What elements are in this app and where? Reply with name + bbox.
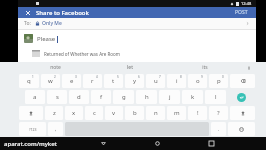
staticText: s xyxy=(56,93,59,101)
button[interactable]: h xyxy=(136,90,157,104)
button[interactable]: 9 xyxy=(188,74,207,88)
button[interactable]: let xyxy=(92,62,167,73)
button[interactable]: Delete xyxy=(230,74,255,88)
staticText: v xyxy=(112,109,116,117)
staticText: p xyxy=(217,77,221,85)
button[interactable]: note xyxy=(18,62,92,73)
staticText: ?123 xyxy=(29,127,37,132)
staticText: y xyxy=(133,77,137,85)
staticText: l xyxy=(215,93,217,101)
button[interactable]: , xyxy=(48,122,63,136)
staticText: m xyxy=(174,109,180,117)
button[interactable]: Tag people xyxy=(32,60,41,69)
staticText: t xyxy=(112,77,115,85)
button[interactable]: 3 xyxy=(62,74,81,88)
button[interactable]: ! xyxy=(188,106,207,120)
staticText: u xyxy=(154,77,158,85)
button[interactable]: l xyxy=(205,90,226,104)
button[interactable]: 0 xyxy=(209,74,228,88)
staticText: x xyxy=(72,109,76,117)
staticText: f xyxy=(100,93,103,101)
staticText: e xyxy=(70,77,74,85)
button[interactable]: Close xyxy=(23,8,32,17)
button[interactable]: m xyxy=(167,106,186,120)
staticText: q xyxy=(27,77,31,85)
staticText: 1 xyxy=(32,75,34,79)
staticText: note xyxy=(50,64,61,71)
button[interactable]: Returned of Whether was Are Room xyxy=(24,50,250,57)
staticText: ? xyxy=(217,109,220,117)
button[interactable]: n xyxy=(146,106,165,120)
button[interactable]: 6 xyxy=(125,74,144,88)
staticText: b xyxy=(133,109,137,117)
button[interactable]: 5 xyxy=(104,74,123,88)
staticText: i xyxy=(176,77,178,85)
button[interactable]: 1 xyxy=(19,74,39,88)
staticText: k xyxy=(191,93,195,101)
staticText: Please xyxy=(37,35,56,43)
button[interactable]: a xyxy=(25,90,45,104)
staticText: j xyxy=(169,93,171,101)
staticText: ! xyxy=(197,109,199,117)
button[interactable]: Home xyxy=(150,137,164,150)
button[interactable]: POST xyxy=(232,8,251,17)
button[interactable]: j xyxy=(159,90,180,104)
button[interactable]: ?123 xyxy=(19,122,46,136)
button[interactable]: Enter xyxy=(237,93,246,102)
button[interactable]: Location xyxy=(68,60,77,69)
button[interactable]: Shift xyxy=(19,106,43,120)
button[interactable]: ? xyxy=(209,106,228,120)
staticText: d xyxy=(77,93,81,101)
staticText: 4 xyxy=(96,75,98,79)
button[interactable]: 4 xyxy=(83,74,102,88)
button[interactable]: 2 xyxy=(41,74,60,88)
staticText: 6 xyxy=(138,75,140,79)
button[interactable]: z xyxy=(45,106,63,120)
button[interactable]: Back xyxy=(96,137,110,150)
button[interactable]: Recents xyxy=(204,137,218,150)
staticText: 3 xyxy=(75,75,77,79)
staticText: Returned of Whether was Are Room xyxy=(44,51,120,57)
button[interactable]: To: xyxy=(18,18,256,29)
staticText: . xyxy=(218,126,220,133)
button[interactable]: k xyxy=(182,90,203,104)
staticText: o xyxy=(196,77,200,85)
button[interactable]: Emoji xyxy=(228,122,255,136)
staticText: aparat.com/myket xyxy=(4,140,57,148)
button[interactable]: Shift xyxy=(230,106,255,120)
button[interactable]: Feeling xyxy=(50,60,59,69)
button[interactable]: 8 xyxy=(167,74,186,88)
button[interactable]: x xyxy=(65,106,83,120)
staticText: Only Me xyxy=(42,20,62,27)
staticText: POST xyxy=(235,9,248,16)
staticText: let xyxy=(127,64,133,71)
staticText: To: xyxy=(24,20,31,27)
staticText: , xyxy=(55,126,57,133)
button[interactable]: 7 xyxy=(146,74,165,88)
button[interactable]: d xyxy=(69,90,89,104)
staticText: Share to Facebook xyxy=(36,9,89,17)
staticText: h xyxy=(145,93,149,101)
button[interactable]: v xyxy=(105,106,123,120)
button[interactable]: f xyxy=(91,90,111,104)
button[interactable]: its xyxy=(167,62,242,73)
staticText: z xyxy=(53,109,56,117)
staticText: 5 xyxy=(117,75,119,79)
button[interactable]: s xyxy=(47,90,67,104)
button[interactable]: g xyxy=(113,90,134,104)
staticText: r xyxy=(91,77,94,85)
staticText: 8 xyxy=(180,75,182,79)
staticText: 2 xyxy=(54,75,56,79)
staticText: 12:48 xyxy=(241,1,252,6)
staticText: g xyxy=(122,93,126,101)
staticText: 0 xyxy=(222,75,224,79)
staticText: w xyxy=(48,77,53,85)
button[interactable]: . xyxy=(211,122,226,136)
staticText: a xyxy=(33,93,37,101)
button[interactable]: More suggestions xyxy=(242,62,256,73)
button[interactable]: b xyxy=(125,106,144,120)
staticText: 7 xyxy=(159,75,161,79)
staticText: 9 xyxy=(201,75,203,79)
button[interactable]: c xyxy=(85,106,103,120)
